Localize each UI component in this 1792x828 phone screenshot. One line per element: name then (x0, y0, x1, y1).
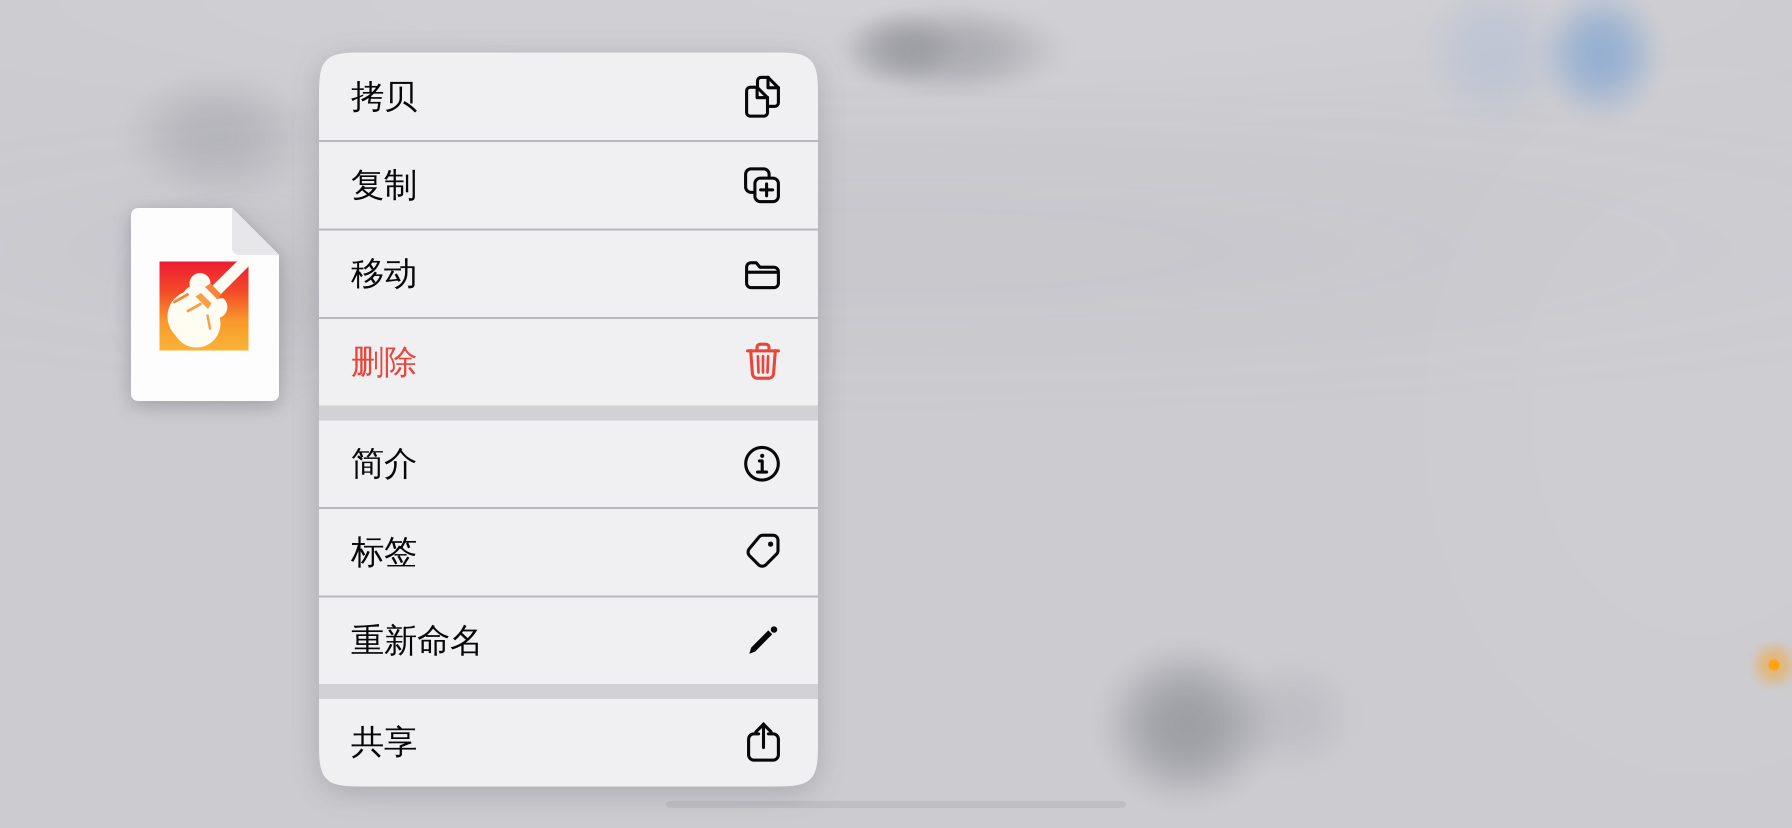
staticText: 复制 (351, 165, 417, 206)
staticText: 删除 (351, 342, 417, 383)
button[interactable]: 复制 (319, 142, 818, 228)
staticText: 重新命名 (351, 620, 483, 661)
staticText: 共享 (351, 722, 417, 763)
button[interactable]: 简介 (319, 420, 818, 507)
button[interactable]: 共享 (319, 699, 818, 785)
staticText: 移动 (351, 253, 417, 294)
button[interactable]: 重新命名 (319, 597, 818, 684)
button[interactable]: 移动 (319, 230, 818, 317)
staticText: 拷贝 (351, 76, 417, 117)
button[interactable]: 拷贝 (319, 53, 818, 140)
button[interactable]: 删除 (319, 319, 818, 405)
staticText: 标签 (351, 532, 417, 573)
staticText: 简介 (351, 443, 417, 484)
button[interactable]: 标签 (319, 509, 818, 595)
